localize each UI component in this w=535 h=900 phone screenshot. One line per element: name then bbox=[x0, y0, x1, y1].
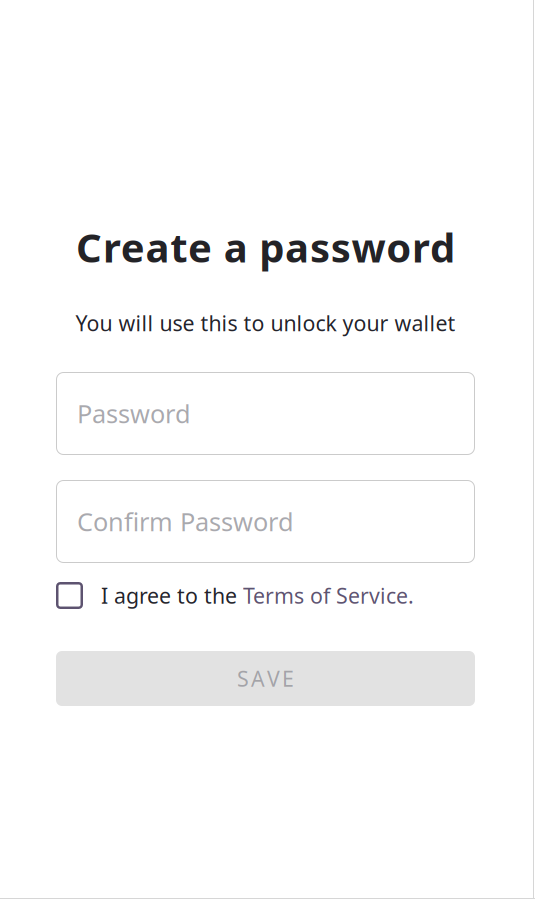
button[interactable]: Confirm Password bbox=[56, 480, 475, 563]
staticText: Create a password bbox=[76, 220, 455, 273]
staticText: Confirm Password bbox=[77, 505, 294, 538]
button[interactable]: S A V E bbox=[56, 651, 475, 706]
staticText: Terms of Service. bbox=[243, 581, 414, 610]
button[interactable]: Password bbox=[56, 372, 475, 455]
button[interactable]: Terms of Service. bbox=[243, 581, 414, 610]
staticText: You will use this to unlock your wallet bbox=[75, 309, 455, 337]
staticText: I agree to the bbox=[101, 581, 243, 610]
button[interactable]: I agree to the Terms of Service bbox=[56, 582, 83, 609]
staticText: Password bbox=[77, 397, 191, 430]
staticText: S A V E bbox=[237, 664, 294, 693]
